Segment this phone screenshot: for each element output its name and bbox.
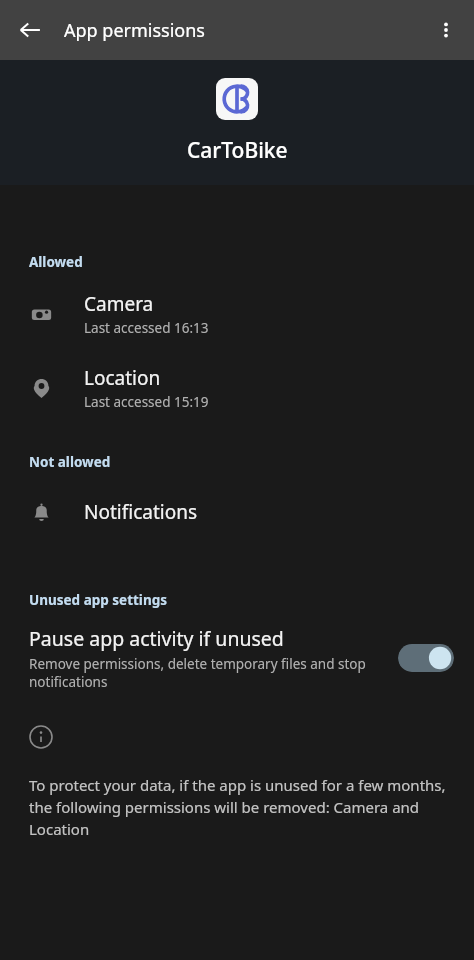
button[interactable]: More options — [424, 8, 468, 52]
button[interactable]: Back — [8, 8, 52, 52]
staticText: Camera — [84, 291, 154, 317]
button[interactable]: Location — [0, 351, 474, 425]
button[interactable]: Pause app activity if unused toggle — [398, 641, 454, 675]
staticText: Last accessed 16:13 — [84, 319, 209, 337]
staticText: App permissions — [64, 18, 205, 43]
staticText: Last accessed 15:19 — [84, 393, 209, 411]
button[interactable]: Notifications — [0, 477, 474, 547]
staticText: Unused app settings — [29, 591, 167, 609]
staticText: CarToBike — [187, 136, 288, 165]
button[interactable]: Pause app activity if unused — [0, 615, 474, 703]
staticText: Pause app activity if unused — [29, 625, 284, 652]
staticText: Notifications — [84, 499, 198, 525]
staticText: Not allowed — [29, 453, 111, 471]
staticText: To protect your data, if the app is unus… — [29, 775, 452, 840]
staticText: Allowed — [29, 253, 83, 271]
staticText: Location — [84, 365, 161, 391]
staticText: Remove permissions, delete temporary fil… — [29, 655, 384, 691]
button[interactable]: Camera — [0, 277, 474, 351]
